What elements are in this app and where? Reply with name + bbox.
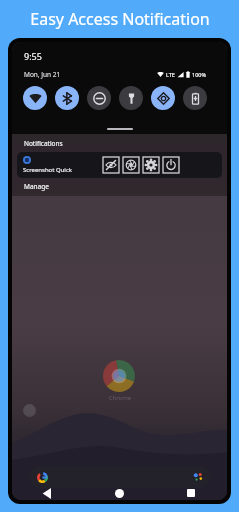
button[interactable]: Wi-Fi — [23, 86, 47, 110]
button[interactable]: Screenshot — [123, 157, 139, 173]
button[interactable]: Power — [163, 157, 179, 173]
button[interactable]: Battery Saver — [183, 86, 207, 110]
staticText: Notifications — [24, 139, 63, 148]
button[interactable]: Settings — [143, 157, 159, 173]
staticText: Manage — [24, 182, 49, 191]
button[interactable]: Home — [83, 476, 155, 500]
button[interactable]: Screenshot Quick — [17, 152, 222, 178]
button[interactable]: Back — [12, 476, 83, 500]
staticText: 100% — [192, 71, 207, 78]
button[interactable]: Do Not Disturb — [87, 86, 111, 110]
staticText: 9:55 — [24, 50, 42, 62]
staticText: Chrome — [100, 394, 140, 402]
button[interactable]: Flashlight — [119, 86, 143, 110]
staticText: Screenshot Quick — [23, 166, 72, 174]
button[interactable]: Hide — [103, 157, 119, 173]
button[interactable] — [30, 466, 210, 488]
button[interactable]: Bluetooth — [55, 86, 79, 110]
staticText: Mon, Jun 21 — [24, 70, 61, 79]
staticText: Easy Access Notification — [30, 8, 210, 30]
button[interactable]: Recent apps — [155, 476, 227, 500]
staticText: LTE — [166, 71, 175, 78]
button[interactable]: Google Assistant — [193, 472, 203, 482]
button[interactable]: Auto-rotate — [151, 86, 175, 110]
button[interactable]: Chrome — [103, 360, 135, 392]
